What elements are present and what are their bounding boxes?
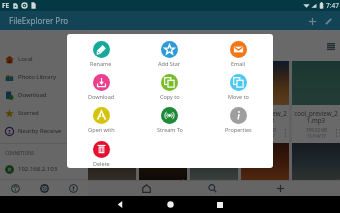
staticText: Add Star — [158, 60, 181, 67]
button[interactable]: Back — [106, 196, 134, 213]
button[interactable]: Search — [204, 180, 220, 196]
staticText: Download — [18, 91, 47, 99]
staticText: Nearby Receive — [18, 127, 62, 135]
button[interactable]: Add Star — [135, 34, 204, 67]
staticText: Photo Library — [18, 73, 56, 81]
button[interactable]: Open with — [67, 100, 135, 134]
staticText: Open with — [88, 126, 115, 133]
button[interactable]: Copy to — [135, 67, 204, 100]
staticText: 192.168.2.103 — [18, 165, 58, 173]
button[interactable]: Add — [272, 180, 288, 196]
staticText: cool_preview_21.mp3 — [294, 109, 338, 125]
button[interactable]: cool_preview_21.mp3 — [292, 143, 340, 180]
button[interactable]: Recents — [206, 196, 234, 213]
button[interactable]: Starred — [0, 104, 88, 122]
button[interactable]: Add — [304, 13, 320, 29]
staticText: Local — [18, 55, 33, 63]
staticText: Rename — [90, 60, 112, 67]
button[interactable]: Sort — [325, 40, 337, 52]
button[interactable]: Photo Library — [0, 68, 88, 86]
staticText: Move to — [228, 93, 249, 100]
button[interactable]: cool_preview_21.mp3 — [190, 143, 238, 180]
button[interactable]: Home — [156, 196, 184, 213]
staticText: Properties — [225, 126, 252, 133]
button[interactable]: cool_preview_21.mp3 — [88, 61, 136, 143]
staticText: Copy to — [160, 93, 180, 100]
staticText: Email — [231, 60, 246, 67]
button[interactable]: 192.168.2.103 — [0, 160, 88, 178]
button[interactable]: cool_preview_21.mp3 — [241, 143, 289, 180]
button[interactable]: Nearby Receive — [0, 122, 88, 140]
button[interactable]: Stream To — [135, 100, 204, 134]
button[interactable]: cool_preview_21.mp3 — [139, 143, 187, 180]
button[interactable]: Email — [204, 34, 273, 67]
staticText: Delete — [93, 160, 110, 167]
button[interactable]: cool_preview_21.mp3 — [88, 143, 136, 180]
staticText: Stream To — [157, 126, 183, 133]
button[interactable]: Properties — [204, 100, 273, 134]
button[interactable]: Help — [0, 180, 30, 196]
button[interactable]: Download — [67, 67, 135, 100]
staticText: cool_preview_21.mp3 — [90, 109, 134, 125]
staticText: 7:47 — [326, 1, 339, 10]
button[interactable]: Edit — [320, 13, 336, 29]
button[interactable]: cool_preview_21.mp3 — [190, 61, 238, 143]
staticText: cool_preview_21.mp3 — [141, 109, 185, 125]
staticText: Starred — [18, 109, 39, 117]
staticText: FileExplorer Pro — [9, 15, 69, 26]
staticText: cool_preview_21.mp3 — [243, 109, 287, 125]
button[interactable]: Rename — [67, 34, 135, 67]
button[interactable]: cool_preview_21.mp3 — [241, 61, 289, 143]
button[interactable]: Local — [0, 50, 88, 68]
staticText: 799.52 KB — [306, 127, 327, 133]
button[interactable]: About — [59, 180, 88, 196]
staticText: FE — [2, 1, 10, 10]
button[interactable]: cool_preview_21.mp3 — [139, 61, 187, 143]
staticText: 11/14/17 — [307, 133, 326, 139]
staticText: 799.52 KB — [153, 127, 174, 133]
staticText: CONNETIONS — [5, 150, 35, 156]
staticText: 799.52 KB — [255, 127, 276, 133]
staticText: 799.52 KB — [102, 127, 123, 133]
button[interactable]: Move to — [204, 67, 273, 100]
button[interactable]: Delete — [67, 134, 135, 168]
button[interactable]: Download — [0, 86, 88, 104]
button[interactable]: cool_preview_21.mp3 — [292, 61, 340, 143]
button[interactable]: Home — [138, 180, 154, 196]
staticText: Download — [88, 93, 115, 100]
staticText: cool_preview_21.mp3 — [192, 109, 236, 125]
button[interactable]: Settings — [30, 180, 59, 196]
staticText: 11/14/17 — [256, 133, 275, 139]
